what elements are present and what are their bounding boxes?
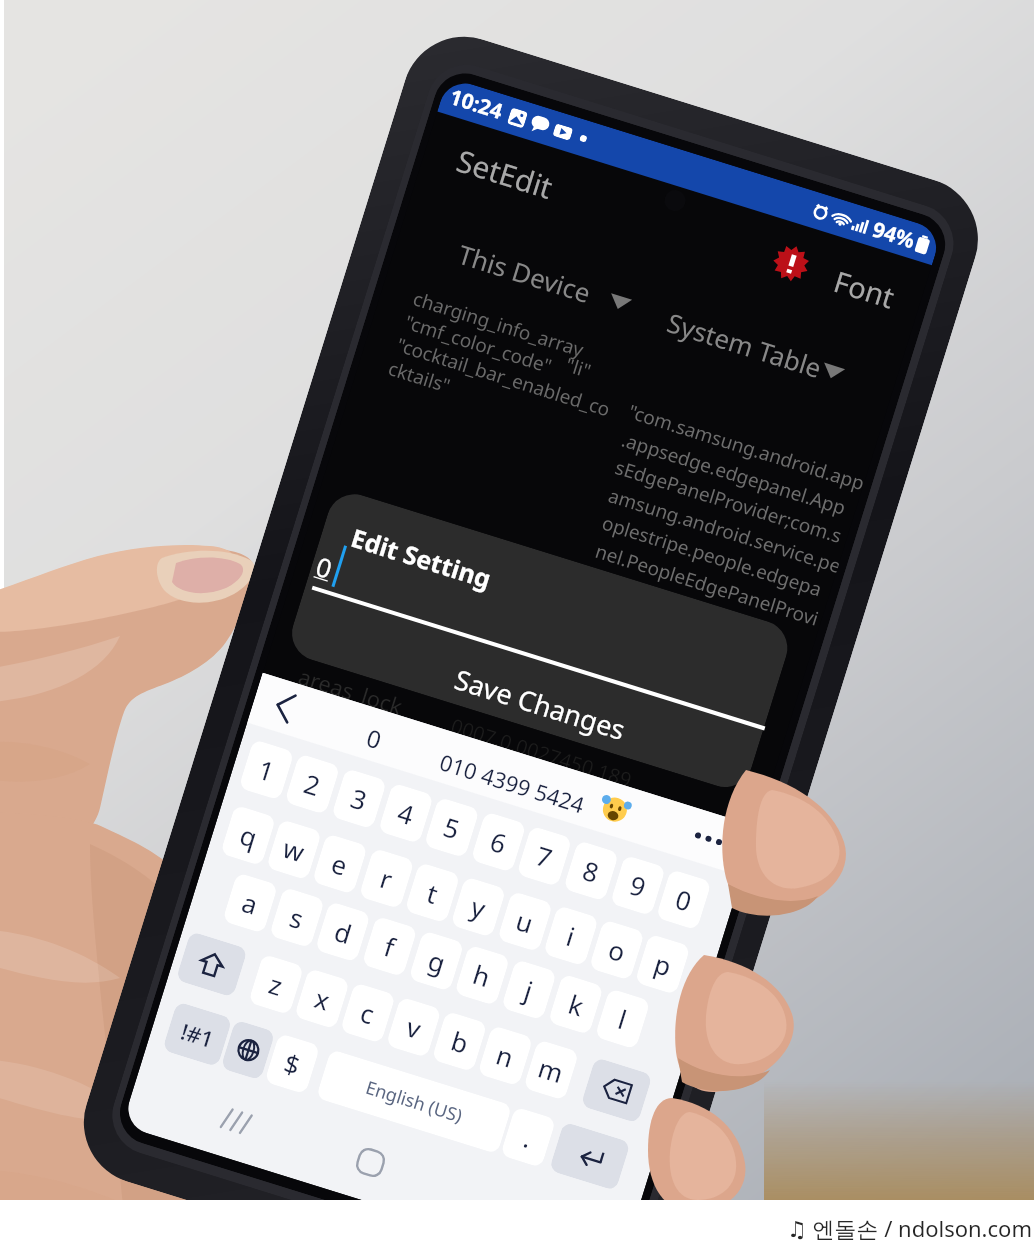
staticText: 5 xyxy=(439,808,464,846)
button[interactable]: 3 xyxy=(331,768,387,829)
button[interactable]: r xyxy=(359,848,415,909)
button[interactable]: s xyxy=(269,887,325,948)
button[interactable]: 8 xyxy=(563,840,619,902)
staticText: w xyxy=(279,830,309,869)
staticText: 10:24 xyxy=(446,82,506,126)
staticText: f xyxy=(380,928,399,964)
staticText: a xyxy=(238,884,262,922)
button[interactable]: Font xyxy=(829,261,899,316)
staticText: !#1 xyxy=(177,1016,218,1054)
staticText: 2 xyxy=(300,765,325,803)
button[interactable]: 2 xyxy=(284,753,340,815)
staticText: d xyxy=(330,913,356,951)
staticText: x xyxy=(311,980,334,1018)
staticText: y xyxy=(467,888,491,926)
staticText: 1 xyxy=(254,751,279,789)
staticText: 0 xyxy=(312,548,337,586)
button[interactable]: o xyxy=(589,919,645,981)
button[interactable]: b xyxy=(431,1011,488,1072)
button[interactable]: !#1 xyxy=(162,1001,233,1067)
button[interactable]: l xyxy=(594,988,651,1050)
button[interactable]: Enter xyxy=(549,1122,631,1191)
button[interactable]: x xyxy=(294,968,350,1029)
button[interactable]: f xyxy=(361,916,418,977)
button[interactable]: 9 xyxy=(610,855,666,916)
staticText: u xyxy=(512,902,538,941)
staticText: p xyxy=(650,945,676,984)
button[interactable]: 7 xyxy=(516,826,572,887)
button[interactable]: Change language xyxy=(220,1019,276,1081)
button[interactable]: t xyxy=(404,862,461,923)
button[interactable]: m xyxy=(523,1039,579,1101)
button[interactable]: Shift xyxy=(175,931,248,998)
staticText: _areas_lock xyxy=(286,658,407,721)
button[interactable]: q xyxy=(220,805,276,866)
staticText: "com.samsung.android.app xyxy=(625,398,868,496)
button[interactable]: 5 xyxy=(424,797,480,858)
staticText: n xyxy=(492,1036,519,1075)
button[interactable]: i xyxy=(543,905,599,966)
button[interactable]: p xyxy=(634,934,691,995)
staticText: g xyxy=(424,942,450,980)
staticText: nel.PeopleEdgePanelProvi xyxy=(592,538,822,632)
button[interactable]: 0 xyxy=(363,721,386,756)
button[interactable]: . xyxy=(500,1106,556,1168)
staticText: e xyxy=(327,845,352,883)
button[interactable]: 6 xyxy=(470,811,527,873)
button[interactable]: 4 xyxy=(378,782,434,844)
staticText: 7 xyxy=(532,837,557,875)
button[interactable]: 0 xyxy=(656,869,712,930)
staticText: .appsedge.edgepanel.App xyxy=(618,427,850,521)
button[interactable]: k xyxy=(548,974,604,1035)
button[interactable]: j xyxy=(501,959,557,1020)
staticText: v xyxy=(402,1009,426,1046)
staticText: k xyxy=(564,986,588,1023)
button[interactable]: y xyxy=(450,876,506,938)
button[interactable]: Backspace xyxy=(580,1057,653,1124)
staticText: h xyxy=(469,956,495,994)
button[interactable]: d xyxy=(315,901,371,963)
staticText: cktails" xyxy=(385,355,454,399)
button[interactable]: z xyxy=(248,954,304,1015)
staticText: "cocktail_bar_enabled_co xyxy=(393,332,614,423)
staticText: 4 xyxy=(394,794,418,832)
button[interactable]: n xyxy=(477,1025,533,1086)
staticText: $ xyxy=(280,1045,305,1083)
button[interactable]: g xyxy=(408,930,464,992)
button[interactable]: More options xyxy=(694,830,725,848)
staticText: q xyxy=(236,816,262,855)
staticText: SetEdit xyxy=(452,140,558,208)
button[interactable]: a xyxy=(222,872,278,934)
staticText: c xyxy=(356,994,379,1032)
staticText: Edit Setting xyxy=(347,520,496,596)
staticText: t xyxy=(423,875,443,911)
staticText: der" xyxy=(585,566,630,603)
button[interactable]: System Table xyxy=(663,304,826,385)
staticText: amsung.android.service.pe xyxy=(605,482,842,578)
staticText: sEdgePanelProvider;com.s xyxy=(612,454,845,549)
staticText: r xyxy=(376,860,397,897)
button[interactable]: h xyxy=(454,944,510,1006)
staticText: "li" xyxy=(562,352,595,384)
button[interactable]: w xyxy=(266,819,322,880)
staticText: b xyxy=(447,1022,473,1061)
button[interactable]: English (US) xyxy=(316,1049,512,1154)
button[interactable]: $ xyxy=(264,1033,320,1095)
button[interactable]: 010 4399 5424 xyxy=(436,746,588,819)
button[interactable]: c xyxy=(340,982,396,1044)
button[interactable] xyxy=(596,791,634,828)
staticText: oplestripe.people.edgepa xyxy=(599,510,825,602)
staticText: charging_info_array xyxy=(410,285,588,363)
button[interactable]: Previous xyxy=(272,691,298,723)
button[interactable]: 1 xyxy=(238,739,295,801)
staticText: 6 xyxy=(486,823,511,861)
staticText: . xyxy=(520,1119,537,1155)
button[interactable]: v xyxy=(386,996,442,1058)
staticText: 2:0-2:22_0 20b7778ih0 166 xyxy=(458,742,705,842)
button[interactable]: u xyxy=(497,891,553,952)
staticText: 9 xyxy=(626,866,650,904)
staticText: 94% xyxy=(869,215,918,255)
button[interactable]: Save Changes xyxy=(450,660,630,748)
button[interactable]: e xyxy=(312,833,368,895)
button[interactable]: This Device xyxy=(454,236,595,310)
